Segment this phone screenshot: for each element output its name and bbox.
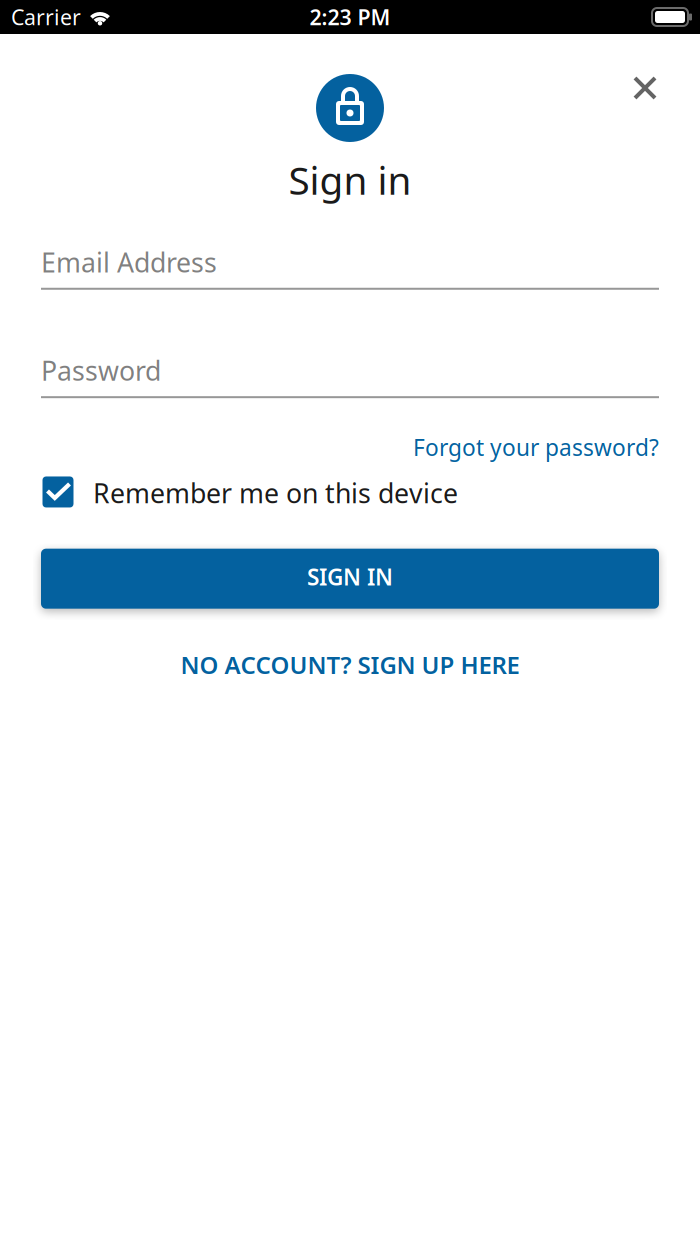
button[interactable]: Close	[620, 63, 670, 113]
staticText: Sign in	[288, 154, 411, 205]
staticText: Email Address	[41, 244, 217, 280]
staticText: Forgot your password?	[413, 432, 659, 462]
staticText: Carrier	[11, 3, 81, 31]
button[interactable]: Remember me on this device	[41, 475, 659, 511]
staticText: SIGN IN	[307, 562, 393, 592]
staticText: Password	[41, 353, 161, 388]
button[interactable]: Forgot your password?	[413, 432, 659, 462]
staticText: 2:23 PM	[309, 3, 390, 31]
staticText: NO ACCOUNT? SIGN UP HERE	[180, 649, 519, 681]
button[interactable]: SIGN IN	[41, 549, 659, 609]
button[interactable]: NO ACCOUNT? SIGN UP HERE	[180, 649, 519, 681]
staticText: Remember me on this device	[93, 475, 458, 511]
